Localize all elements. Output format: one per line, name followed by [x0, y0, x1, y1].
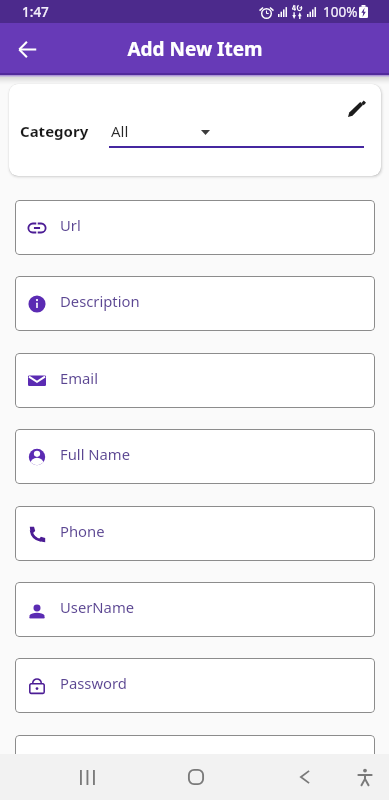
button[interactable]: Recent apps — [65, 761, 109, 793]
button[interactable]: Full Name — [15, 429, 375, 484]
staticText: Url — [60, 215, 81, 235]
button[interactable]: Note — [15, 735, 375, 754]
button[interactable]: All — [109, 114, 364, 148]
button[interactable]: Password — [15, 658, 375, 713]
button[interactable]: Email — [15, 353, 375, 408]
staticText: Category — [20, 121, 89, 141]
staticText: Password — [60, 673, 127, 693]
button[interactable]: Description — [15, 276, 375, 331]
button[interactable]: Navigate up — [13, 35, 41, 63]
staticText: Description — [60, 291, 140, 311]
staticText: All — [111, 121, 129, 141]
staticText: UserName — [60, 597, 135, 617]
button[interactable]: Edit — [346, 97, 367, 118]
staticText: 100% — [323, 3, 358, 21]
button[interactable]: Url — [15, 200, 375, 255]
button[interactable]: Home — [174, 761, 218, 793]
staticText: 1:47 — [22, 3, 49, 21]
staticText: Email — [60, 368, 98, 388]
staticText: Phone — [60, 521, 105, 541]
staticText: Full Name — [60, 444, 131, 464]
button[interactable]: Accessibility — [346, 760, 384, 794]
button[interactable]: Phone — [15, 506, 375, 561]
button[interactable]: Back — [283, 761, 327, 793]
staticText: Add New Item — [127, 36, 263, 62]
button[interactable]: UserName — [15, 582, 375, 637]
